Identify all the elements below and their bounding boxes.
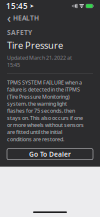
staticText: HEALTH (13, 14, 39, 22)
staticText: ➤ (29, 3, 33, 9)
staticText: Updated March 21, 2022 at 15:45 (7, 54, 72, 68)
staticText: Tire Pressure (7, 39, 63, 51)
staticText: 15:45 (6, 1, 28, 11)
staticText: Go To Dealer (29, 150, 71, 159)
staticText: SAFETY (7, 28, 32, 37)
staticText: TPMS SYSTEM FAILURE when a failure is de… (7, 79, 84, 143)
button[interactable]: Back to Health (3, 8, 43, 28)
button[interactable]: Go To Dealer (7, 149, 93, 160)
staticText: ‹ (7, 10, 11, 26)
